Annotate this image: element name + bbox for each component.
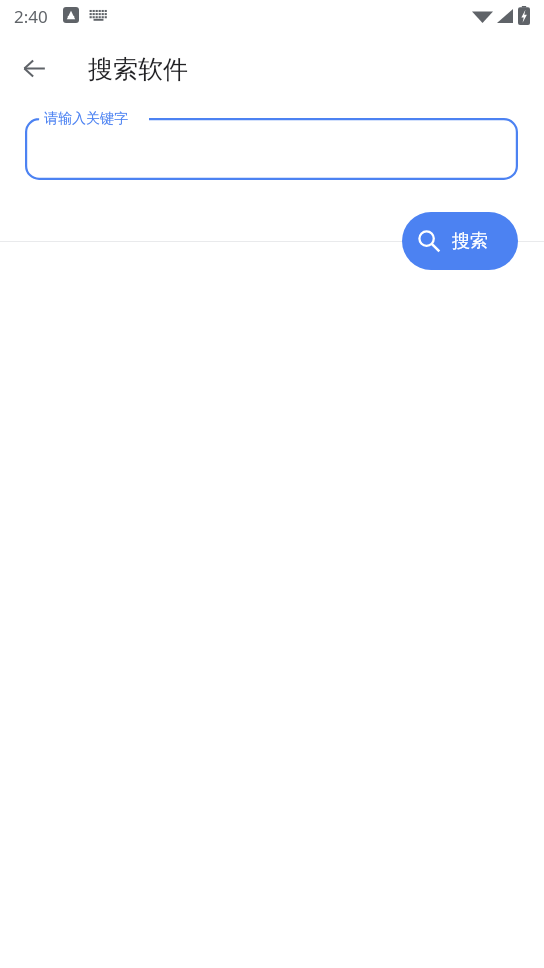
staticText: 请输入关键字	[44, 110, 128, 128]
button[interactable]	[25, 118, 518, 180]
staticText: 搜索	[452, 230, 488, 253]
button[interactable]: 搜索	[402, 212, 518, 270]
staticText: 2:40	[14, 5, 48, 28]
button[interactable]: Back	[14, 48, 54, 88]
staticText: 搜索软件	[88, 54, 188, 85]
